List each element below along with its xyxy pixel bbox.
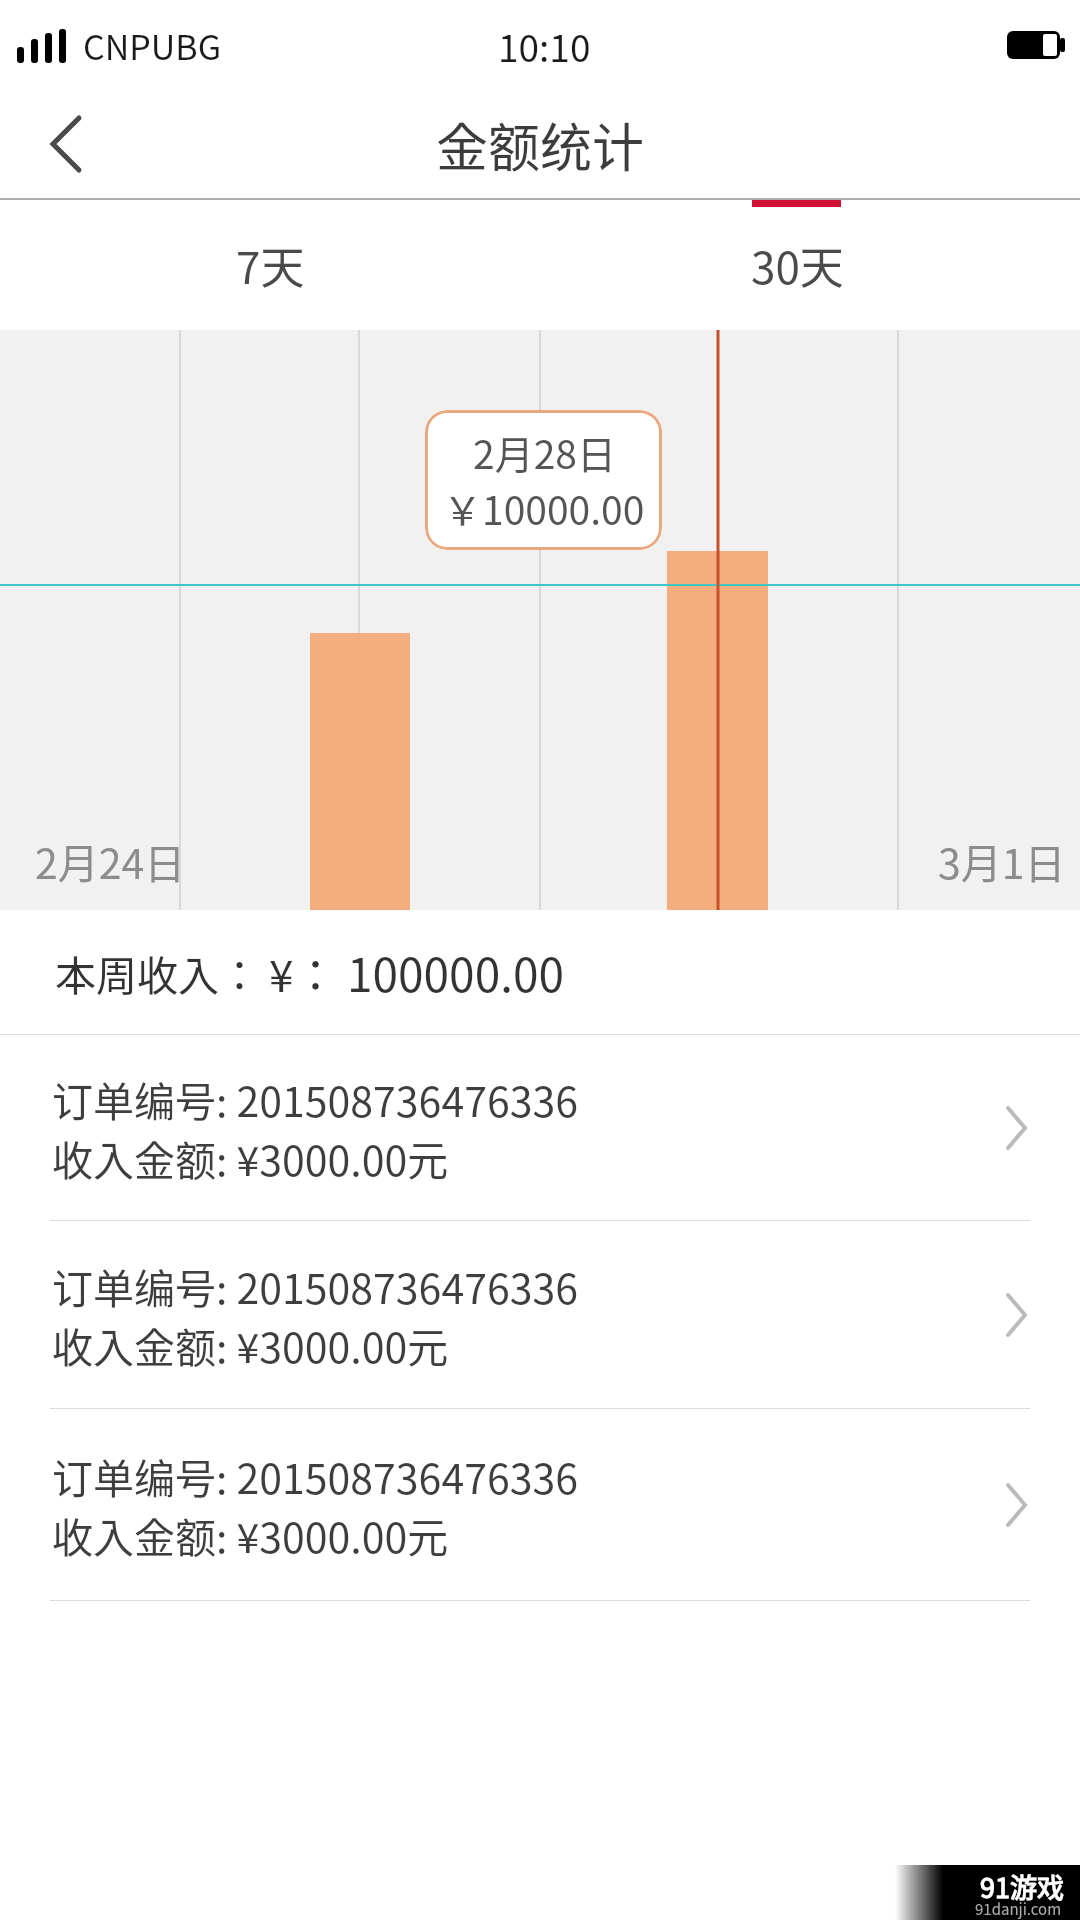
button[interactable]: 订单编号: 201508736476336 [0, 1035, 1080, 1221]
staticText: 30天 [751, 233, 844, 297]
staticText: 100000.00 [347, 939, 565, 1006]
button[interactable]: 7天 [0, 200, 540, 330]
staticText: 订单编号: 201508736476336 [52, 1069, 578, 1128]
staticText: 7天 [236, 233, 305, 297]
staticText: ￥10000.00 [443, 480, 645, 536]
staticText: 订单编号: 201508736476336 [52, 1256, 578, 1315]
button[interactable]: 30天 [540, 200, 1080, 330]
staticText: ¥： [269, 941, 338, 1005]
staticText: 91游戏 [980, 1867, 1064, 1906]
staticText: 2月24日 [35, 831, 186, 890]
staticText: 91danji.com [975, 1898, 1062, 1920]
staticText: 本周收入： [55, 943, 260, 1002]
staticText: 收入金额: ¥3000.00元 [52, 1505, 449, 1564]
staticText: 收入金额: ¥3000.00元 [52, 1315, 449, 1374]
staticText: 10:10 [498, 19, 591, 73]
staticText: CNPUBG [83, 21, 222, 70]
staticText: 3月1日 [938, 831, 1066, 890]
button[interactable] [36, 109, 96, 179]
button[interactable]: 订单编号: 201508736476336 [0, 1221, 1080, 1409]
staticText: 收入金额: ¥3000.00元 [52, 1128, 449, 1187]
staticText: 金额统计 [436, 107, 645, 182]
staticText: 订单编号: 201508736476336 [52, 1446, 578, 1505]
button[interactable]: 订单编号: 201508736476336 [0, 1409, 1080, 1601]
staticText: 2月28日 [473, 424, 616, 480]
